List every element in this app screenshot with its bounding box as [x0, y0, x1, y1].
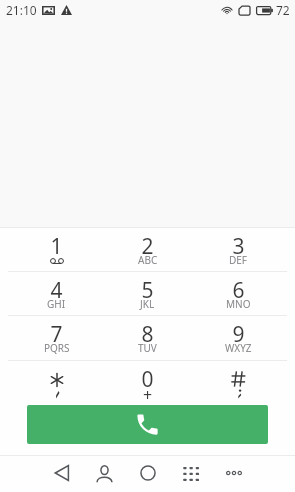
- button[interactable]: 1: [11, 228, 102, 271]
- staticText: 72: [276, 2, 290, 18]
- button[interactable]: 5: [102, 272, 193, 315]
- staticText: 1: [50, 232, 63, 261]
- button[interactable]: Call: [27, 405, 268, 444]
- button[interactable]: Home: [126, 456, 169, 492]
- button[interactable]: [193, 361, 284, 405]
- button[interactable]: 8: [102, 316, 193, 360]
- staticText: MNO: [226, 297, 251, 311]
- staticText: WXYZ: [225, 341, 252, 355]
- staticText: 21:10: [6, 2, 37, 18]
- button[interactable]: Back: [40, 456, 83, 492]
- staticText: 2: [141, 232, 154, 261]
- staticText: 0: [141, 365, 154, 394]
- staticText: 6: [232, 276, 245, 305]
- staticText: PQRS: [44, 341, 70, 355]
- staticText: 3: [232, 232, 245, 261]
- staticText: 7: [50, 320, 63, 349]
- button[interactable]: 9: [193, 316, 284, 360]
- button[interactable]: Contacts: [83, 456, 126, 492]
- button[interactable]: [11, 361, 102, 405]
- staticText: JKL: [140, 297, 155, 311]
- staticText: GHI: [47, 297, 66, 311]
- button[interactable]: 3: [193, 228, 284, 271]
- staticText: DEF: [229, 253, 248, 267]
- staticText: ABC: [138, 253, 158, 267]
- button[interactable]: 6: [193, 272, 284, 315]
- button[interactable]: Keypad: [169, 456, 212, 492]
- button[interactable]: 4: [11, 272, 102, 315]
- button[interactable]: Recent apps: [212, 456, 255, 492]
- staticText: 4: [50, 276, 63, 305]
- button[interactable]: 2: [102, 228, 193, 271]
- staticText: +: [143, 384, 153, 406]
- staticText: 9: [232, 320, 245, 349]
- staticText: TUV: [138, 341, 157, 355]
- staticText: 5: [141, 276, 154, 305]
- staticText: 8: [141, 320, 154, 349]
- button[interactable]: 7: [11, 316, 102, 360]
- button[interactable]: 0: [102, 361, 193, 405]
